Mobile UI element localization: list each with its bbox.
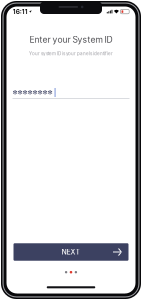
staticText: 16:11 (13, 8, 28, 15)
staticText: Enter your System ID (29, 34, 112, 45)
button[interactable]: NEXT (13, 243, 128, 261)
staticText: NEXT (61, 248, 80, 256)
staticText: ✻✻✻✻✻✻✻✻ (12, 89, 52, 96)
staticText: Your system ID is your panels identifier (29, 51, 113, 56)
